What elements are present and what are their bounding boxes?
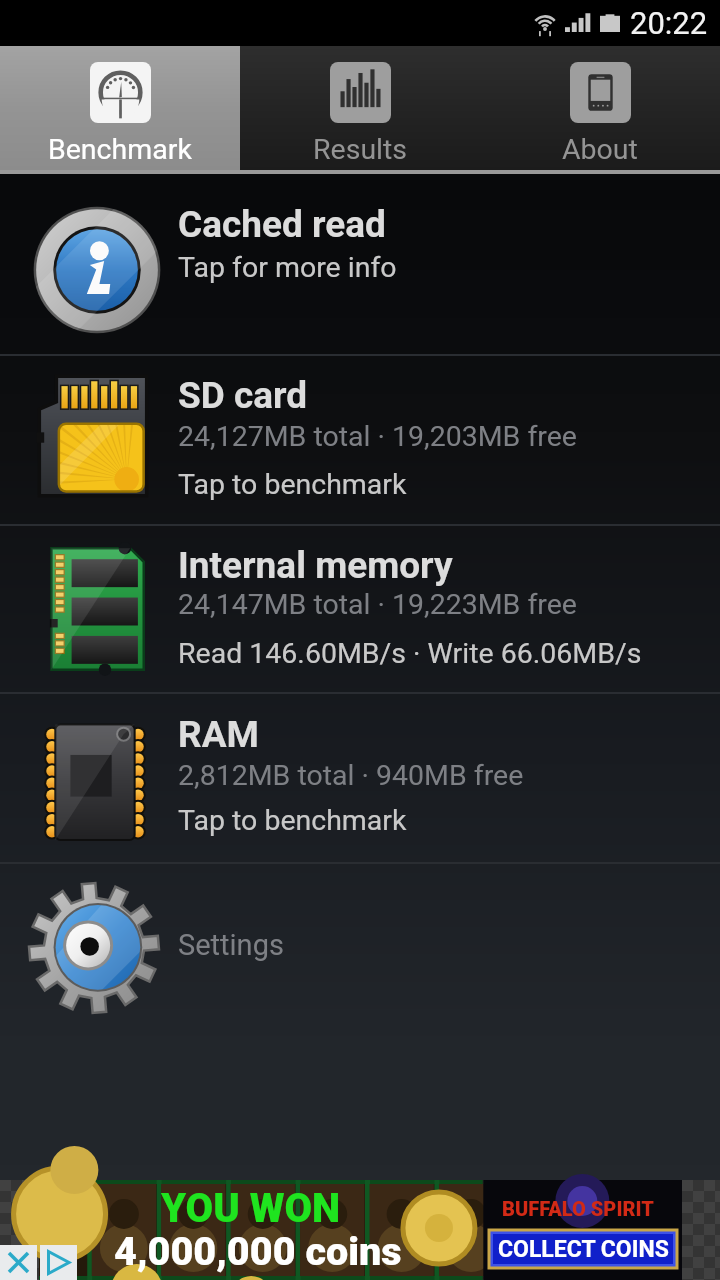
staticText: RAM [178, 713, 259, 756]
staticText: YOU WON [161, 1185, 341, 1232]
staticText: 20:22 [630, 5, 708, 41]
staticText: COLLECT COINS [498, 1236, 669, 1263]
staticText: Cached read [178, 203, 386, 246]
staticText: Tap for more info [178, 251, 397, 284]
button[interactable]: Ad choices [40, 1245, 77, 1280]
staticText: SD card [178, 374, 308, 417]
staticText: BUFFALO SPIRIT [502, 1197, 654, 1220]
button[interactable]: About [480, 46, 720, 170]
button[interactable]: Settings [0, 864, 720, 1036]
staticText: Benchmark [48, 133, 192, 166]
staticText: Settings [178, 928, 284, 962]
staticText: Internal memory [178, 544, 453, 587]
staticText: 2,812MB total · 940MB free [178, 759, 524, 792]
button[interactable]: Cached read [0, 174, 720, 354]
button[interactable]: Close ad [0, 1245, 37, 1280]
staticText: 24,147MB total · 19,223MB free [178, 588, 577, 621]
button[interactable]: Results [240, 46, 480, 170]
staticText: About [562, 133, 638, 166]
button[interactable]: RAM [0, 694, 720, 862]
staticText: Read 146.60MB/s · Write 66.06MB/s [178, 637, 642, 670]
staticText: Tap to benchmark [178, 804, 407, 837]
staticText: 24,127MB total · 19,203MB free [178, 420, 577, 453]
button[interactable]: Internal memory [0, 526, 720, 692]
staticText: 4,000,000 coins [114, 1228, 402, 1274]
staticText: Tap to benchmark [178, 468, 407, 501]
button[interactable]: YOU WON [39, 1180, 682, 1280]
button[interactable]: SD card [0, 356, 720, 524]
button[interactable]: Benchmark [0, 46, 240, 170]
staticText: Results [313, 133, 408, 166]
